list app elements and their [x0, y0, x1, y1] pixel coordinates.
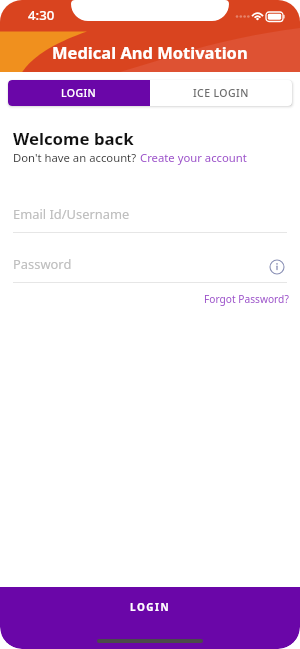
staticText: Email Id/Username [13, 205, 130, 223]
button[interactable]: ICE LOGIN [150, 80, 292, 106]
staticText: Welcome back [13, 127, 134, 150]
button[interactable]: Forgot Password? [204, 292, 289, 306]
button[interactable]: Password information [269, 259, 285, 275]
button[interactable]: LOGIN [8, 80, 150, 106]
staticText: Don't have an account? [13, 150, 140, 165]
staticText: ICE LOGIN [193, 86, 249, 100]
button[interactable]: LOGIN [0, 587, 300, 649]
button[interactable]: Create your account [140, 150, 247, 165]
staticText: Medical And Motivation [52, 41, 248, 63]
staticText: LOGIN [130, 600, 171, 614]
staticText: 4:30 [28, 6, 55, 24]
staticText: LOGIN [61, 86, 97, 100]
staticText: Password [13, 255, 72, 273]
